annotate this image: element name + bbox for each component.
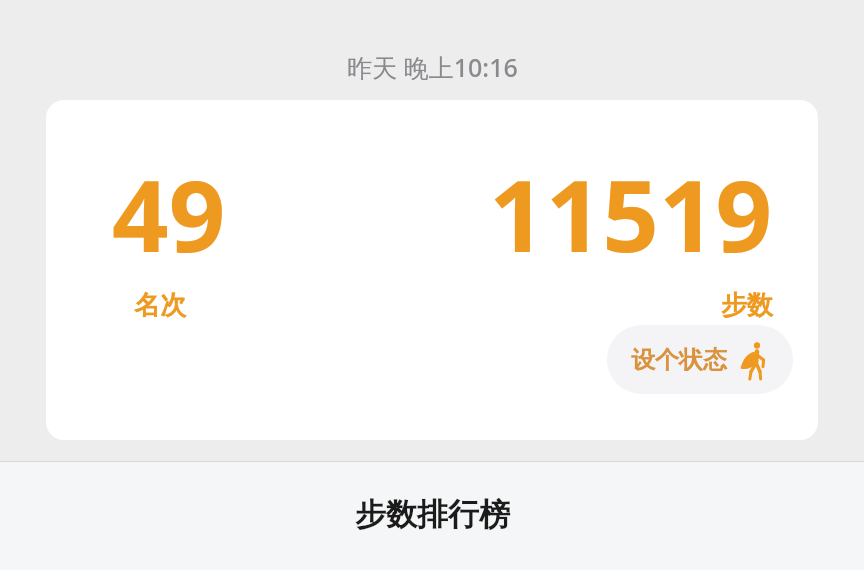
staticText: 步数	[721, 289, 773, 322]
staticText: 49	[112, 146, 226, 281]
button[interactable]: 49	[46, 100, 818, 440]
staticText: 昨天 晚上10:16	[347, 50, 518, 84]
staticText: 设个状态	[631, 345, 727, 375]
button[interactable]: 设个状态	[607, 325, 793, 394]
staticText: 11519	[489, 146, 773, 281]
staticText: 名次	[134, 289, 186, 322]
other: Set status	[739, 339, 769, 381]
staticText: 步数排行榜	[355, 495, 510, 534]
